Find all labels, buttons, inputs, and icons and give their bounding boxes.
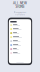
button[interactable] bbox=[10, 47, 30, 51]
button[interactable] bbox=[10, 31, 30, 35]
button[interactable] bbox=[10, 23, 30, 27]
staticText: SIGNS bbox=[15, 5, 24, 8]
button[interactable] bbox=[10, 27, 30, 31]
staticText: Move an instinct bbox=[13, 11, 26, 13]
button[interactable] bbox=[10, 39, 30, 43]
button[interactable] bbox=[10, 51, 30, 55]
staticText: traffic here bbox=[15, 13, 25, 16]
staticText: ALL NEW bbox=[13, 1, 27, 5]
button[interactable] bbox=[10, 35, 30, 39]
button[interactable] bbox=[10, 43, 30, 47]
